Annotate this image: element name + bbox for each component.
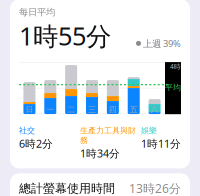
staticText: 娛樂 <box>141 126 157 135</box>
staticText: 1時11分 <box>141 136 181 151</box>
staticText: 生產力工具與財務 <box>80 126 136 145</box>
staticText: 四 <box>109 105 117 114</box>
staticText: 6時2分 <box>19 136 53 151</box>
staticText: 六 <box>151 105 159 114</box>
staticText: 三 <box>88 105 96 114</box>
staticText: 1時55分 <box>19 19 111 53</box>
staticText: 一 <box>46 105 54 114</box>
staticText: 總計螢幕使用時間 <box>19 181 115 196</box>
staticText: 每日平均 <box>19 6 55 18</box>
staticText: 二 <box>67 105 75 114</box>
staticText: 日 <box>25 105 33 114</box>
staticText: 上週 39% <box>143 37 181 50</box>
staticText: 社交 <box>19 126 35 135</box>
staticText: 4時 <box>170 62 181 71</box>
staticText: 平均 <box>165 83 181 92</box>
staticText: 五 <box>130 105 138 114</box>
button[interactable]: 總計螢幕使用時間 <box>10 173 190 196</box>
staticText: 1時34分 <box>80 146 120 160</box>
staticText: 13時26分 <box>129 180 181 196</box>
